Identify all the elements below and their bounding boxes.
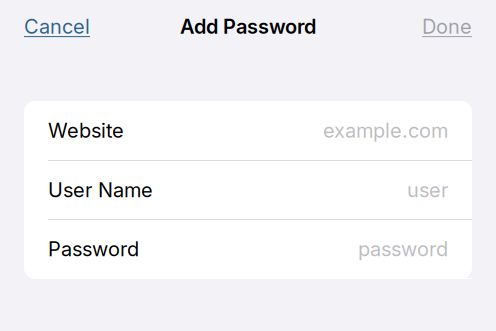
staticText: example.com [323, 118, 448, 143]
staticText: Cancel [24, 14, 90, 39]
staticText: Website [48, 118, 124, 143]
staticText: password [358, 237, 448, 261]
button[interactable]: Cancel [24, 14, 90, 39]
staticText: user [407, 178, 448, 202]
button[interactable]: User Name [24, 161, 472, 220]
staticText: User Name [48, 178, 153, 202]
staticText: Done [422, 14, 472, 39]
button[interactable]: Password [24, 220, 472, 279]
staticText: Password [48, 237, 139, 261]
button[interactable]: Done [422, 14, 472, 39]
staticText: Add Password [180, 14, 316, 39]
button[interactable]: Website [24, 101, 472, 161]
